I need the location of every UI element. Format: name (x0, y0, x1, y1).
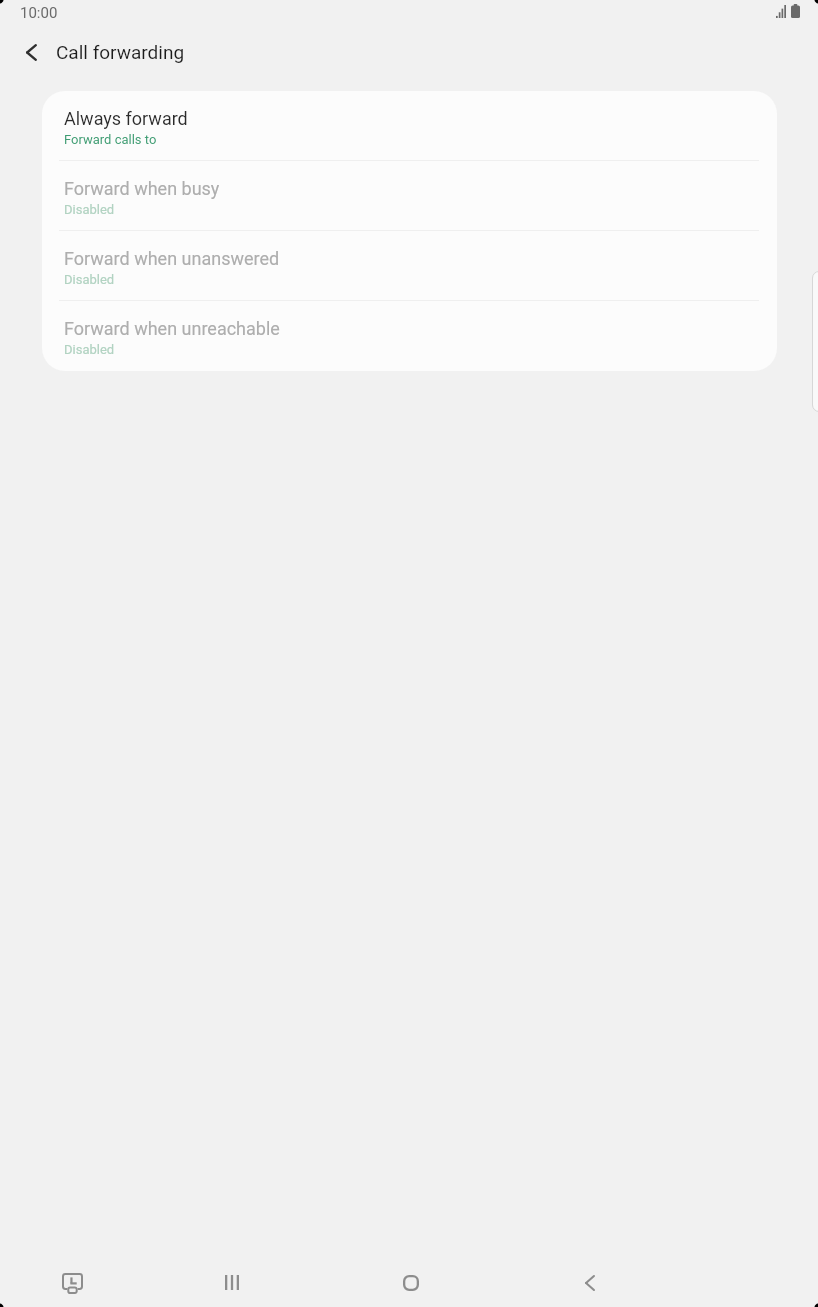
staticText: Forward when unanswered (64, 248, 280, 269)
staticText: Disabled (64, 272, 115, 287)
staticText: Forward when unreachable (64, 318, 280, 339)
button[interactable]: Hide keyboard (40, 1250, 104, 1307)
button[interactable]: Forward when unreachable (42, 301, 777, 371)
staticText: Forward calls to (64, 132, 157, 147)
button[interactable]: Home (379, 1250, 443, 1307)
staticText: Forward when busy (64, 178, 220, 199)
staticText: Disabled (64, 202, 115, 217)
button[interactable]: Forward when unanswered (42, 231, 777, 301)
staticText: Disabled (64, 342, 115, 357)
staticText: Always forward (64, 108, 188, 129)
button[interactable]: Forward when busy (42, 161, 777, 231)
button[interactable]: Recent apps (200, 1250, 264, 1307)
staticText: Call forwarding (56, 41, 185, 63)
staticText: 10:00 (20, 4, 58, 22)
button[interactable]: Back (558, 1250, 622, 1307)
button[interactable]: Back (0, 28, 56, 76)
button[interactable]: Always forward (42, 91, 777, 161)
